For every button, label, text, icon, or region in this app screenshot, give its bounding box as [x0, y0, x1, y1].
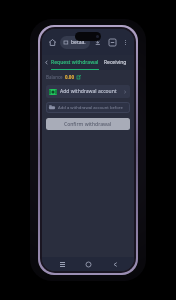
- button[interactable]: More options: [119, 36, 131, 48]
- staticText: Request withdrawal: [51, 59, 99, 66]
- button[interactable]: Back: [42, 55, 51, 70]
- button[interactable]: betaa...: [60, 36, 90, 49]
- button[interactable]: Home: [45, 35, 59, 49]
- button[interactable]: Receiving account: [104, 55, 134, 70]
- button[interactable]: Add withdrawal account: [46, 85, 130, 98]
- button[interactable]: Tabs: [106, 36, 118, 48]
- button[interactable]: Confirm withdrawal: [46, 118, 130, 130]
- staticText: betaa...: [71, 39, 86, 46]
- staticText: Add a withdrawal account before withdraw…: [58, 105, 127, 111]
- button[interactable]: Back: [108, 257, 122, 271]
- button[interactable]: Request withdrawal: [51, 55, 99, 70]
- staticText: Add withdrawal account: [60, 88, 123, 95]
- staticText: 0.00: [65, 74, 74, 80]
- staticText: Balance: [46, 74, 63, 80]
- button[interactable]: Add a withdrawal account before withdraw…: [46, 102, 130, 113]
- button[interactable]: Downloads: [92, 36, 104, 48]
- staticText: Receiving account: [104, 59, 134, 66]
- button[interactable]: Home: [81, 257, 95, 271]
- staticText: Confirm withdrawal: [64, 121, 112, 128]
- button[interactable]: Refresh balance: [76, 74, 82, 80]
- button[interactable]: Recent apps: [55, 257, 69, 271]
